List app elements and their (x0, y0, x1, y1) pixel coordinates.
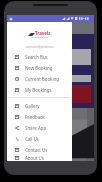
button[interactable]: Gallery (7, 100, 72, 111)
staticText: Gallery (25, 103, 40, 109)
staticText: Contact Us (25, 147, 48, 153)
staticText: Call Us (25, 136, 39, 142)
button[interactable]: Feedback (7, 111, 72, 122)
staticText: Travels (35, 30, 51, 36)
button[interactable]: Current Booking (7, 73, 72, 84)
staticText: Search Bus (25, 54, 48, 60)
button[interactable]: About Us (7, 155, 72, 161)
button[interactable]: Contact Us (7, 144, 72, 155)
staticText: My Bookings (25, 87, 52, 93)
staticText: About Us (25, 155, 44, 161)
button[interactable]: Call Us (7, 133, 72, 144)
button[interactable]: My Bookings (7, 84, 72, 95)
staticText: Share App (25, 125, 47, 131)
staticText: travel worldwide (31, 36, 49, 39)
button[interactable]: Search Bus (7, 51, 72, 62)
button[interactable]: Share App (7, 122, 72, 133)
staticText: Get Your Trip (10, 36, 35, 41)
button[interactable]: New Booking (7, 62, 72, 73)
staticText: username@gmail.com (26, 45, 54, 49)
staticText: New Booking (25, 65, 53, 71)
staticText: Current Booking (25, 76, 60, 82)
staticText: Feedback (25, 114, 45, 120)
